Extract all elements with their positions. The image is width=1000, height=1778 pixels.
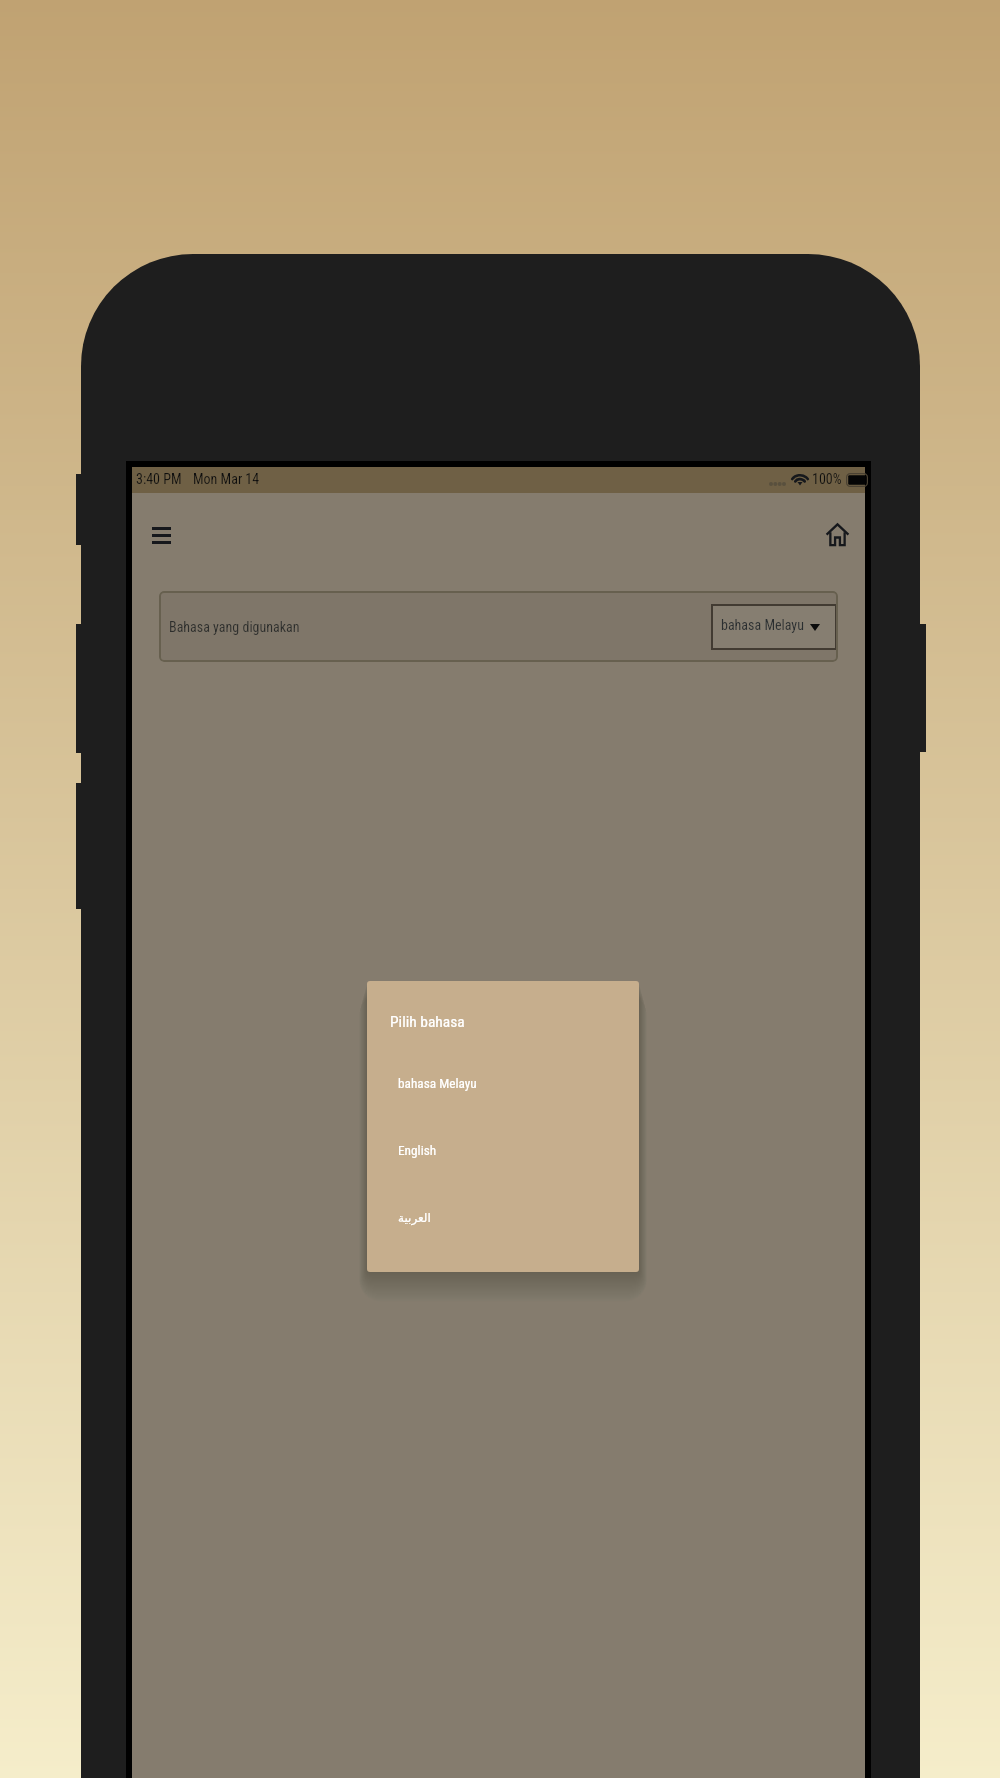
staticText: Pilih bahasa — [390, 1013, 465, 1031]
staticText: العربية — [398, 1211, 431, 1225]
staticText: Mon Mar 14 — [193, 471, 260, 487]
staticText: Bahasa yang digunakan — [169, 619, 300, 635]
button[interactable]: العربية — [367, 1184, 639, 1251]
staticText: 3:40 PM — [136, 471, 182, 487]
button[interactable]: bahasa Melayu — [711, 604, 837, 650]
button[interactable]: Home — [813, 510, 861, 558]
staticText: bahasa Melayu — [721, 617, 804, 633]
button[interactable]: Bahasa yang digunakan — [159, 591, 838, 662]
button[interactable]: English — [367, 1117, 639, 1184]
button[interactable]: bahasa Melayu — [367, 1050, 639, 1117]
staticText: English — [398, 1143, 437, 1159]
staticText: bahasa Melayu — [398, 1076, 477, 1092]
staticText: 100% — [812, 471, 842, 487]
button[interactable]: Open navigation menu — [137, 511, 185, 559]
